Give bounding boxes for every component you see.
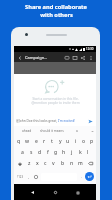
staticText: ,: [28, 174, 30, 179]
button[interactable]: More options: [87, 54, 94, 61]
button[interactable]: Send: [86, 117, 94, 125]
button[interactable]: Enter: [85, 172, 94, 181]
staticText: a: [21, 149, 24, 156]
button[interactable]: h: [60, 147, 68, 158]
button[interactable]: Home: [51, 188, 60, 197]
button[interactable]: u: [64, 136, 72, 147]
button[interactable]: Back: [28, 188, 37, 197]
button[interactable]: z: [25, 158, 33, 169]
button[interactable]: Recents: [73, 188, 82, 197]
staticText: i: [75, 138, 77, 145]
button[interactable]: t: [48, 136, 56, 147]
staticText: o: [82, 138, 86, 145]
staticText: I'm excited!: [58, 119, 75, 123]
button[interactable]: ,: [26, 169, 32, 184]
button[interactable]: Share: [79, 54, 86, 61]
staticText: ?123: [17, 175, 24, 179]
staticText: d: [38, 149, 42, 156]
staticText: r: [43, 138, 46, 145]
button[interactable]: Symbols: [14, 169, 26, 184]
staticText: p: [90, 138, 94, 145]
button[interactable]: Shift: [14, 158, 25, 169]
button[interactable]: ahead: [14, 126, 39, 136]
staticText: with others: [40, 11, 73, 19]
button[interactable]: s: [27, 147, 36, 158]
staticText: k: [79, 149, 82, 156]
staticText: @mention people to invite them: [31, 101, 80, 105]
button[interactable]: Back: [16, 54, 23, 61]
button[interactable]: j: [68, 147, 76, 158]
staticText: s: [30, 149, 33, 156]
staticText: a: [76, 129, 78, 133]
staticText: Campaign...: [25, 55, 48, 60]
staticText: m: [78, 160, 83, 167]
button[interactable]: Comment: [63, 54, 70, 61]
button[interactable]: Emoji: [32, 169, 40, 184]
button[interactable]: e: [32, 136, 40, 147]
button[interactable]: b: [58, 158, 67, 169]
staticText: u: [66, 138, 70, 145]
staticText: c: [44, 160, 47, 167]
staticText: should it means: [40, 129, 64, 133]
button[interactable]: f: [44, 147, 52, 158]
staticText: Share and collaborate: [25, 3, 87, 11]
staticText: .: [81, 174, 83, 179]
staticText: l: [87, 149, 89, 156]
staticText: 12:30: [86, 47, 94, 51]
staticText: g: [54, 149, 58, 156]
button[interactable]: a: [64, 126, 89, 136]
button[interactable]: y: [56, 136, 64, 147]
button[interactable]: g: [52, 147, 60, 158]
staticText: e: [35, 138, 38, 145]
staticText: n: [70, 160, 74, 167]
staticText: w: [25, 138, 30, 145]
button[interactable]: p: [88, 136, 96, 147]
button[interactable]: should it means: [39, 126, 64, 136]
button[interactable]: a: [18, 147, 27, 158]
staticText: j: [71, 149, 73, 156]
staticText: q: [17, 138, 21, 145]
button[interactable]: More suggestions: [89, 126, 96, 136]
button[interactable]: m: [76, 158, 85, 169]
staticText: x: [36, 160, 39, 167]
staticText: v: [52, 160, 55, 167]
button[interactable]: q: [14, 136, 23, 147]
staticText: y: [59, 138, 62, 145]
button[interactable]: l: [84, 147, 92, 158]
button[interactable]: d: [36, 147, 44, 158]
button[interactable]: x: [33, 158, 41, 169]
staticText: @John Doe this looks great,: [16, 119, 58, 123]
staticText: Start a conversation in this file.: [32, 97, 79, 101]
button[interactable]: k: [76, 147, 84, 158]
button[interactable]: i: [72, 136, 80, 147]
button[interactable]: w: [23, 136, 32, 147]
staticText: z: [28, 160, 31, 167]
staticText: h: [62, 149, 66, 156]
button[interactable]: v: [49, 158, 58, 169]
button[interactable]: Delete: [85, 158, 96, 169]
button[interactable]: r: [40, 136, 48, 147]
button[interactable]: c: [41, 158, 49, 169]
staticText: ahead: [22, 129, 32, 133]
button[interactable]: Present: [71, 54, 78, 61]
button[interactable]: n: [67, 158, 76, 169]
button[interactable]: o: [80, 136, 88, 147]
staticText: t: [51, 138, 53, 145]
staticText: f: [47, 149, 49, 156]
staticText: b: [61, 160, 65, 167]
